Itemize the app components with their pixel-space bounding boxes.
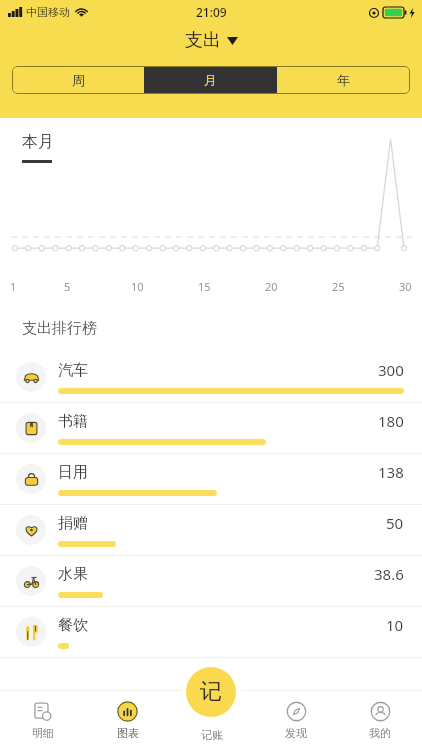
button[interactable]: 支出: [177, 27, 246, 54]
staticText: 发现: [285, 726, 307, 740]
button[interactable]: 我的: [338, 690, 422, 750]
button[interactable]: 捐赠: [0, 505, 422, 556]
staticText: 年: [337, 72, 350, 88]
staticText: 记: [200, 678, 222, 706]
staticText: 周: [72, 72, 85, 88]
staticText: 50: [386, 513, 404, 533]
staticText: 10: [131, 279, 144, 294]
staticText: 图表: [117, 726, 139, 740]
staticText: 300: [378, 360, 404, 380]
staticText: 本月: [22, 132, 54, 152]
staticText: 记账: [201, 728, 223, 742]
button[interactable]: 本月: [22, 132, 54, 163]
staticText: 书籍: [58, 412, 88, 431]
button[interactable]: 日用: [0, 454, 422, 505]
staticText: 支出排行榜: [22, 319, 97, 338]
staticText: 中国移动: [26, 5, 70, 19]
staticText: 10: [386, 615, 404, 635]
staticText: 餐饮: [58, 616, 88, 635]
button[interactable]: 水果: [0, 556, 422, 607]
staticText: 15: [198, 279, 211, 294]
staticText: 20: [265, 279, 278, 294]
staticText: 捐赠: [58, 514, 88, 533]
staticText: 1: [10, 279, 17, 294]
button[interactable]: 周: [12, 66, 144, 94]
staticText: 月: [204, 72, 217, 88]
button[interactable]: 书籍: [0, 403, 422, 454]
staticText: 30: [399, 279, 412, 294]
staticText: 21:09: [196, 4, 227, 20]
staticText: 5: [64, 279, 71, 294]
button[interactable]: 月: [144, 66, 277, 94]
button[interactable]: 年: [277, 66, 410, 94]
staticText: 25: [332, 279, 345, 294]
staticText: 汽车: [58, 361, 88, 380]
button[interactable]: 图表: [85, 690, 170, 750]
button[interactable]: 汽车: [0, 352, 422, 403]
staticText: 日用: [58, 463, 88, 482]
button[interactable]: 发现: [254, 690, 338, 750]
staticText: 180: [378, 411, 404, 431]
staticText: 38.6: [374, 564, 404, 584]
button[interactable]: 记账 Add record: [181, 662, 241, 722]
button[interactable]: 明细: [0, 690, 85, 750]
staticText: 138: [378, 462, 404, 482]
staticText: 水果: [58, 565, 88, 584]
staticText: 明细: [32, 726, 54, 740]
staticText: 我的: [369, 726, 391, 740]
staticText: 支出: [185, 29, 221, 52]
button[interactable]: 餐饮: [0, 607, 422, 658]
